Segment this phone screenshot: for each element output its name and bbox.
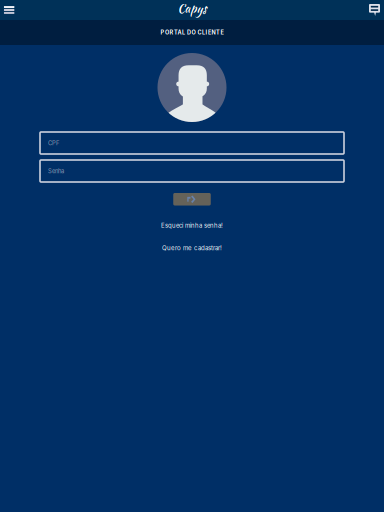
button[interactable]: Menu xyxy=(0,0,18,20)
staticText: Quero me cadastrar! xyxy=(162,244,222,252)
button[interactable]: Quero me cadastrar! xyxy=(162,244,222,252)
button[interactable]: Senha xyxy=(40,160,344,182)
button[interactable]: Messages xyxy=(365,0,384,20)
staticText: Esqueci minha senha! xyxy=(161,222,223,229)
staticText: PORTAL DO CLIENTE xyxy=(160,29,223,36)
button[interactable]: Entrar xyxy=(173,193,211,205)
button[interactable]: CPF xyxy=(40,132,344,154)
staticText: Capys xyxy=(177,0,206,17)
button[interactable]: Esqueci minha senha! xyxy=(161,222,223,229)
staticText: CPF xyxy=(48,139,59,147)
staticText: Senha xyxy=(48,167,64,175)
